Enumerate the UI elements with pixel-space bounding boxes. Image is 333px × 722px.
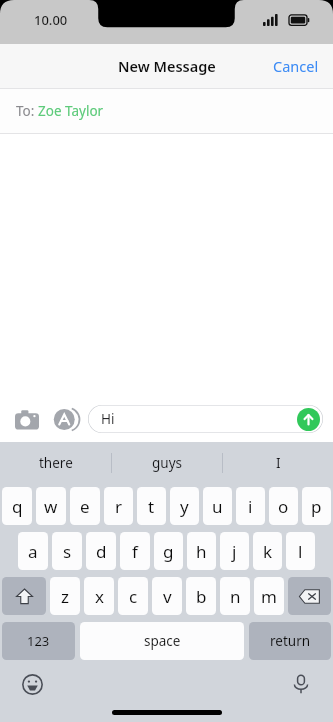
button[interactable]: g [154, 532, 183, 570]
button[interactable]: y [170, 487, 199, 525]
button[interactable]: 123 [2, 622, 75, 660]
button[interactable]: Emoji [17, 669, 47, 699]
button[interactable]: Camera [10, 402, 44, 436]
staticText: New Message [118, 56, 216, 76]
staticText: h [196, 540, 207, 563]
staticText: n [230, 585, 241, 608]
button[interactable]: p [302, 487, 331, 525]
button[interactable]: q [2, 487, 32, 525]
staticText: y [180, 495, 189, 518]
button[interactable]: f [120, 532, 150, 570]
button[interactable]: s [52, 532, 82, 570]
staticText: p [311, 495, 322, 518]
button[interactable]: e [70, 487, 100, 525]
staticText: e [80, 495, 90, 518]
staticText: i [248, 495, 253, 518]
staticText: 10.00 [34, 11, 68, 29]
staticText: c [129, 585, 138, 608]
staticText: b [196, 585, 207, 608]
button[interactable]: o [269, 487, 298, 525]
staticText: 123 [27, 632, 50, 650]
button[interactable]: h [187, 532, 216, 570]
staticText: s [63, 540, 72, 563]
button[interactable]: Hi [88, 405, 323, 433]
button[interactable]: m [254, 577, 284, 615]
button[interactable]: c [118, 577, 148, 615]
button[interactable]: I [223, 442, 333, 483]
button[interactable]: k [253, 532, 282, 570]
button[interactable]: i [236, 487, 265, 525]
button[interactable]: b [186, 577, 216, 615]
staticText: Cancel [273, 56, 319, 76]
staticText: there [39, 454, 73, 472]
staticText: Zoe Taylor [38, 102, 104, 120]
button[interactable]: j [220, 532, 249, 570]
staticText: d [96, 540, 107, 563]
button[interactable]: App Store [48, 402, 82, 436]
button[interactable]: d [86, 532, 116, 570]
button[interactable]: there [0, 442, 111, 483]
staticText: t [148, 495, 155, 518]
staticText: I [276, 454, 281, 472]
staticText: To: [16, 102, 38, 120]
button[interactable]: r [104, 487, 133, 525]
staticText: m [261, 585, 277, 608]
staticText: v [163, 585, 172, 608]
staticText: l [298, 540, 303, 563]
staticText: w [44, 495, 58, 518]
staticText: o [278, 495, 289, 518]
button[interactable]: x [84, 577, 114, 615]
staticText: u [212, 495, 223, 518]
button[interactable]: Dictation [286, 669, 316, 699]
button[interactable]: Delete [288, 577, 331, 615]
staticText: x [95, 585, 104, 608]
button[interactable]: v [152, 577, 182, 615]
staticText: g [163, 540, 174, 563]
staticText: q [12, 495, 23, 518]
staticText: f [132, 540, 138, 563]
button[interactable]: z [50, 577, 80, 615]
button[interactable]: n [220, 577, 250, 615]
button[interactable]: Send [297, 408, 320, 431]
staticText: k [263, 540, 273, 563]
staticText: guys [152, 454, 182, 472]
button[interactable]: l [286, 532, 315, 570]
button[interactable]: u [203, 487, 232, 525]
staticText: return [270, 632, 311, 650]
button[interactable]: Shift [2, 577, 46, 615]
staticText: space [144, 632, 181, 650]
staticText: j [232, 540, 237, 563]
staticText: z [61, 585, 69, 608]
staticText: r [115, 495, 123, 518]
button[interactable]: space [80, 622, 244, 660]
button[interactable]: To: [0, 89, 333, 133]
button[interactable]: w [36, 487, 66, 525]
staticText: a [28, 540, 38, 563]
button[interactable]: guys [112, 442, 222, 483]
button[interactable]: Cancel [259, 46, 333, 86]
button[interactable]: return [249, 622, 331, 660]
button[interactable]: t [137, 487, 166, 525]
button[interactable]: a [18, 532, 48, 570]
staticText: Hi [101, 410, 115, 428]
